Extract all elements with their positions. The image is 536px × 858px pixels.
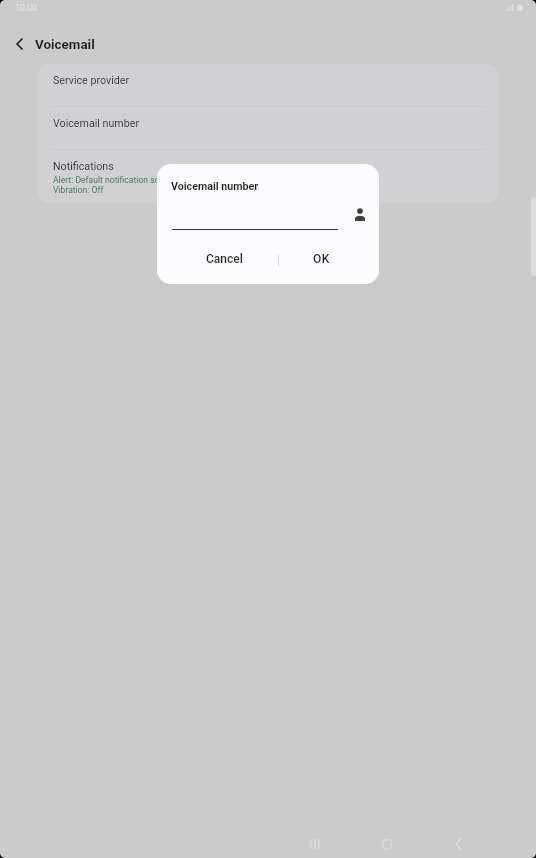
button[interactable]: Notifications [38, 150, 498, 203]
staticText: OK [313, 252, 330, 266]
button[interactable]: Cancel [166, 242, 282, 276]
button[interactable]: Voicemail number [38, 107, 498, 149]
staticText: Vibration: Off [53, 185, 104, 195]
button[interactable]: Service provider [38, 64, 498, 106]
button[interactable]: Navigate up [2, 27, 36, 61]
staticText: 10:00 [15, 3, 37, 13]
button[interactable]: OK [272, 242, 370, 276]
staticText: Voicemail number [53, 117, 140, 130]
staticText: Alert: Default notification sound [53, 175, 174, 185]
staticText: Notifications [53, 160, 114, 173]
staticText: Service provider [53, 74, 130, 87]
staticText: Cancel [206, 252, 243, 266]
staticText: Voicemail [35, 37, 95, 53]
staticText: Voicemail number [171, 180, 259, 193]
button[interactable]: Select contact [349, 203, 371, 225]
